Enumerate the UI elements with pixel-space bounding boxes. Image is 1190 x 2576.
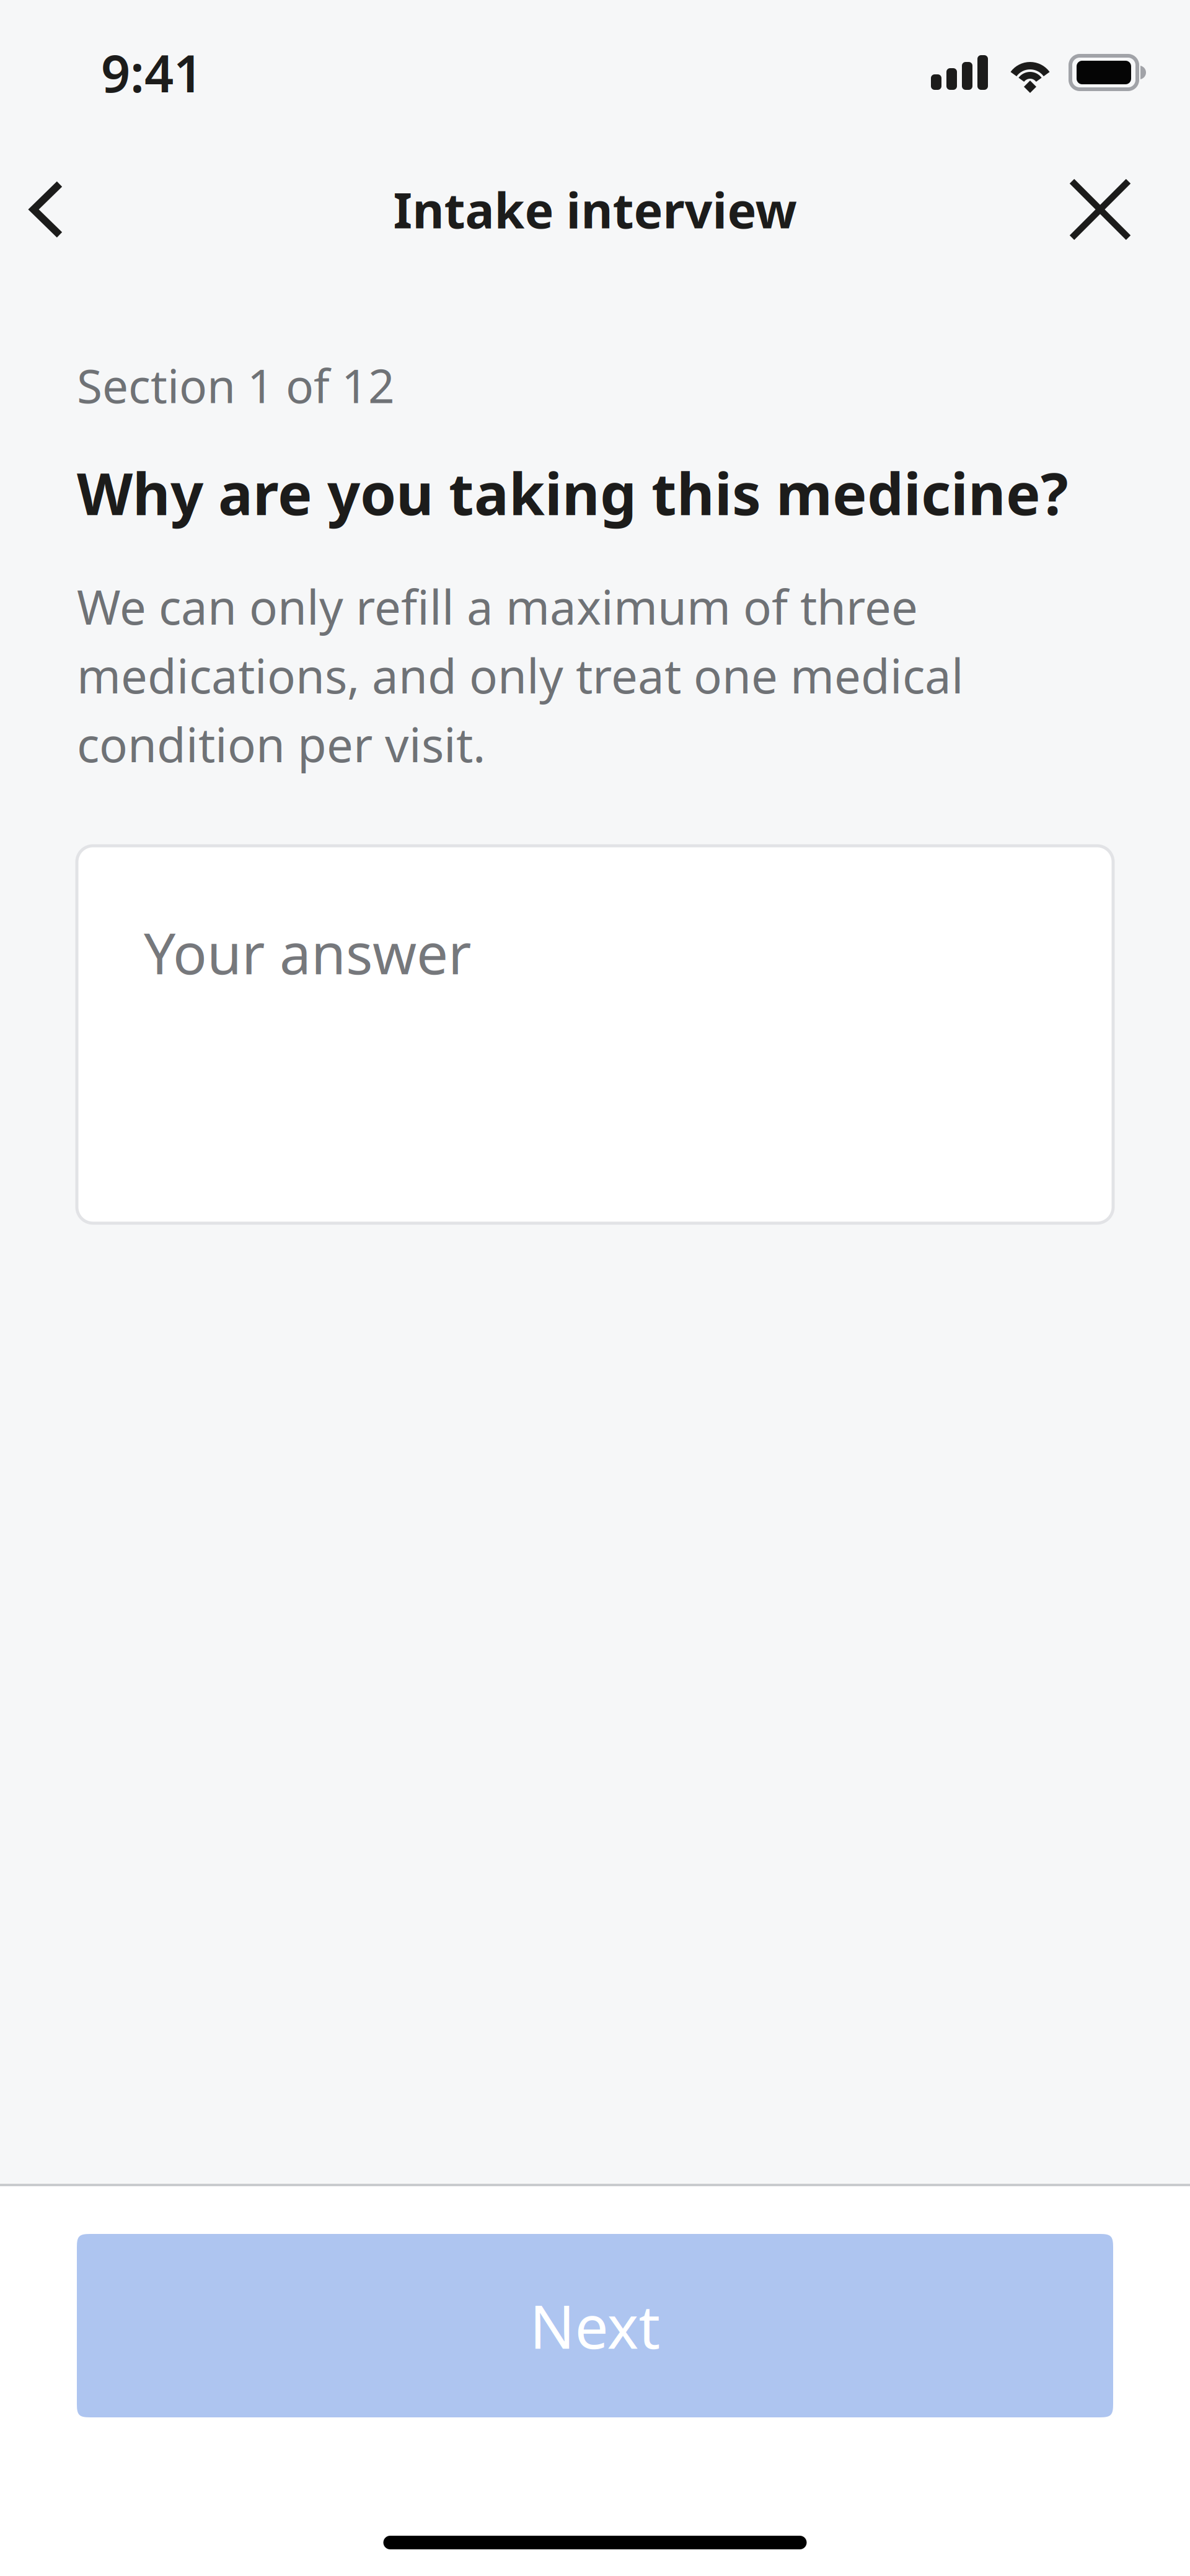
staticText: Next [530,2286,660,2365]
staticText: Intake interview [393,177,797,242]
staticText: Section 1 of 12 [77,354,395,416]
button[interactable]: Back [0,163,93,256]
staticText: We can only refill a maximum of three me… [77,575,964,775]
button[interactable]: Your answer [77,846,1113,1223]
button[interactable]: Close [1054,163,1147,256]
staticText: Your answer [144,915,471,990]
staticText: Why are you taking this medicine? [77,454,1069,531]
button[interactable]: Next [77,2234,1113,2417]
staticText: 9:41 [101,38,203,107]
